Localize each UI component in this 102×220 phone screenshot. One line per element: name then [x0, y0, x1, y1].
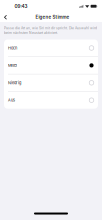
staticText: Niedrig: [8, 80, 21, 85]
button[interactable]: Mittel: [4, 57, 98, 74]
staticText: Aus: [8, 98, 15, 103]
staticText: Passe die Art an, wie Siri mit dir spric…: [4, 26, 97, 35]
button[interactable]: Hoch: [4, 39, 98, 56]
staticText: 09:43: [14, 3, 27, 9]
staticText: Eigene Stimme: [35, 14, 69, 20]
staticText: Hoch: [8, 46, 17, 50]
button[interactable]: Back: [0, 13, 11, 22]
button[interactable]: Niedrig: [4, 74, 98, 91]
button[interactable]: Aus: [4, 92, 98, 109]
staticText: Mittel: [8, 63, 17, 68]
